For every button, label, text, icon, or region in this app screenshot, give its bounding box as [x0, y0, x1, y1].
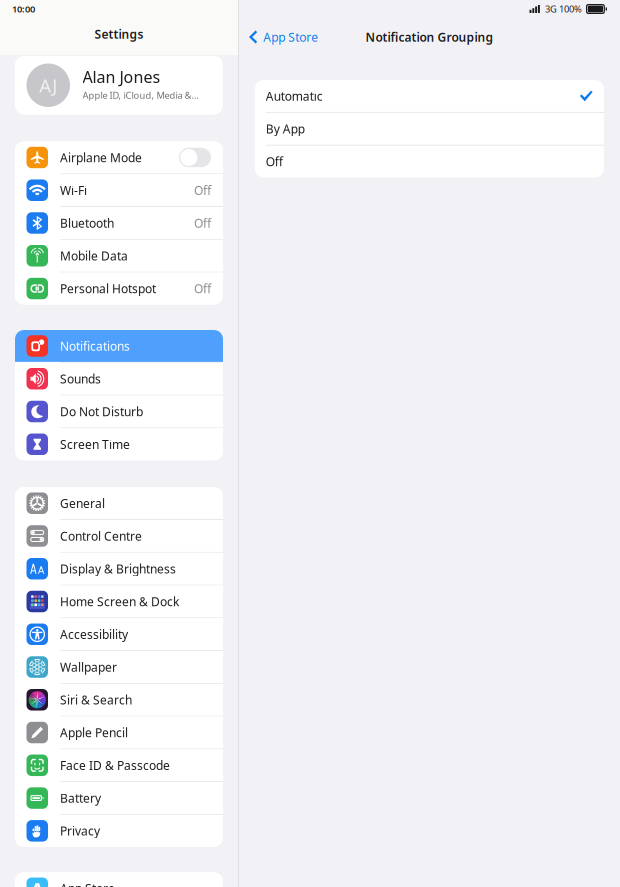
- staticText: Battery: [60, 790, 101, 806]
- button[interactable]: App Store: [15, 872, 223, 887]
- staticText: App Store: [60, 880, 115, 887]
- button[interactable]: App Store: [242, 24, 324, 50]
- staticText: Alan Jones: [82, 66, 160, 87]
- staticText: By App: [266, 121, 305, 137]
- staticText: Automatic: [266, 88, 323, 104]
- button[interactable]: Screen Time: [15, 428, 223, 460]
- staticText: Notification Grouping: [365, 29, 493, 45]
- staticText: App Store: [263, 29, 318, 45]
- staticText: Off: [194, 281, 211, 296]
- button[interactable]: Accessibility: [15, 618, 223, 650]
- button[interactable]: Battery: [15, 782, 223, 814]
- button[interactable]: Privacy: [15, 815, 223, 847]
- button[interactable]: Siri & Search: [15, 684, 223, 716]
- button[interactable]: Bluetooth: [15, 207, 223, 239]
- button[interactable]: AJ: [0, 56, 238, 114]
- staticText: Notifications: [60, 338, 130, 354]
- button[interactable]: Wi-Fi: [15, 174, 223, 206]
- button[interactable]: Notifications: [15, 330, 223, 362]
- button[interactable]: Home Screen & Dock: [15, 585, 223, 617]
- button[interactable]: Airplane Mode: [15, 141, 223, 173]
- button[interactable]: Off: [255, 145, 604, 177]
- staticText: Settings: [94, 26, 143, 42]
- staticText: Personal Hotspot: [60, 281, 156, 296]
- button[interactable]: Wallpaper: [15, 651, 223, 683]
- button[interactable]: Sounds: [15, 363, 223, 395]
- staticText: Off: [194, 215, 211, 231]
- staticText: Face ID & Passcode: [60, 757, 170, 773]
- staticText: Display & Brightness: [60, 561, 176, 577]
- staticText: Mobile Data: [60, 248, 128, 264]
- staticText: Control Centre: [60, 528, 142, 544]
- staticText: Wallpaper: [60, 659, 117, 675]
- button[interactable]: Automatic: [255, 80, 604, 112]
- staticText: Off: [194, 182, 211, 198]
- staticText: Wi-Fi: [60, 182, 87, 198]
- button[interactable]: Control Centre: [15, 520, 223, 552]
- staticText: Airplane Mode: [60, 149, 142, 165]
- staticText: General: [60, 495, 105, 511]
- staticText: Privacy: [60, 823, 100, 839]
- staticText: Do Not Disturb: [60, 403, 143, 419]
- button[interactable]: Do Not Disturb: [15, 395, 223, 427]
- staticText: Accessibility: [60, 626, 128, 642]
- staticText: Apple Pencil: [60, 725, 128, 740]
- button[interactable]: General: [15, 487, 223, 519]
- button[interactable]: Mobile Data: [15, 240, 223, 272]
- staticText: Screen Time: [60, 436, 130, 452]
- staticText: Home Screen & Dock: [60, 593, 179, 609]
- button[interactable]: Face ID & Passcode: [15, 749, 223, 781]
- staticText: Apple ID, iCloud, Media &…: [82, 89, 198, 101]
- staticText: Siri & Search: [60, 692, 132, 708]
- staticText: Sounds: [60, 371, 101, 387]
- staticText: AJ: [39, 73, 57, 98]
- staticText: 3G 100%: [545, 3, 582, 15]
- button[interactable]: Personal Hotspot: [15, 272, 223, 304]
- button[interactable]: By App: [255, 113, 604, 145]
- staticText: Off: [266, 153, 283, 169]
- button[interactable]: Apple Pencil: [15, 717, 223, 749]
- staticText: 10:00: [12, 3, 35, 15]
- button[interactable]: Display & Brightness: [15, 553, 223, 585]
- staticText: Bluetooth: [60, 215, 114, 231]
